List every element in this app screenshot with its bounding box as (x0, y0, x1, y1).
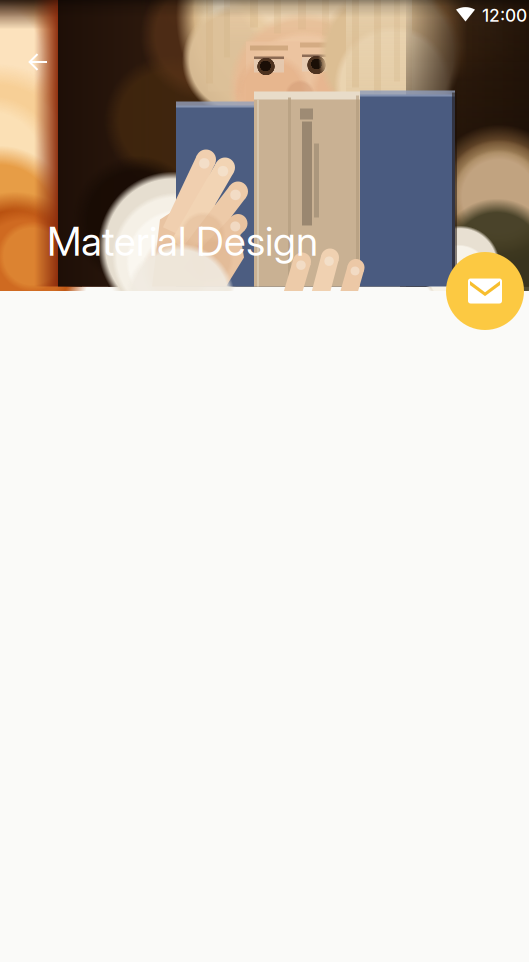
button[interactable]: Back (14, 38, 62, 86)
staticText: 12:00 (482, 5, 527, 26)
button[interactable]: Compose mail (446, 252, 524, 330)
staticText: Material Design (47, 217, 318, 265)
